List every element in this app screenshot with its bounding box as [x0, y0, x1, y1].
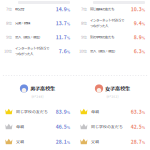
button[interactable]: 8位 — [75, 16, 150, 30]
button[interactable]: 父親 — [75, 134, 150, 149]
staticText: (n=252) — [106, 94, 118, 99]
staticText: 11.7 — [56, 33, 67, 41]
staticText: % — [67, 8, 70, 12]
staticText: % — [142, 50, 145, 54]
staticText: 13.7 — [56, 19, 67, 27]
staticText: 83.9 — [56, 108, 67, 115]
staticText: 8.9 — [134, 33, 142, 41]
staticText: 10.3 — [131, 5, 142, 13]
staticText: 8位 — [6, 20, 12, 26]
staticText: 父親 — [16, 139, 24, 144]
staticText: % — [67, 36, 70, 40]
staticText: つながった人 — [90, 23, 108, 28]
staticText: % — [67, 140, 70, 145]
button[interactable]: 8位 — [0, 16, 75, 30]
staticText: 10位 — [4, 48, 12, 54]
staticText: % — [142, 36, 145, 40]
staticText: 同じ学校の友だち — [16, 109, 48, 114]
staticText: % — [67, 50, 70, 54]
button[interactable]: 9位 — [0, 30, 75, 44]
staticText: インターネットやSNSで — [90, 18, 124, 23]
staticText: 母親 — [91, 109, 99, 114]
staticText: 7.6 — [59, 47, 67, 55]
staticText: 別の学校の友だち — [90, 34, 114, 39]
staticText: つながった人 — [15, 51, 33, 56]
staticText: 28.7 — [131, 138, 142, 145]
button[interactable]: 9位 — [75, 30, 150, 44]
staticText: 父親 — [91, 139, 99, 144]
staticText: 9位 — [81, 34, 87, 40]
staticText: 恋人（彼氏・彼女） — [15, 34, 42, 39]
staticText: % — [142, 110, 145, 115]
staticText: 恋人（彼氏・彼女） — [90, 48, 117, 53]
staticText: % — [67, 125, 70, 130]
staticText: 10位 — [79, 48, 87, 54]
staticText: 同じ学校の友だち — [91, 124, 123, 129]
staticText: 28.1 — [56, 138, 67, 145]
staticText: 8位 — [81, 20, 87, 26]
staticText: 6.3 — [134, 47, 142, 55]
staticText: 9位 — [6, 34, 12, 40]
button[interactable]: 同じ学校の友だち — [75, 119, 150, 134]
button[interactable]: 母親 — [75, 104, 150, 119]
button[interactable]: 10位 — [0, 44, 75, 58]
staticText: 9.4 — [134, 19, 142, 27]
staticText: % — [67, 22, 70, 26]
staticText: 7位 — [81, 6, 87, 12]
button[interactable]: 10位 — [75, 44, 150, 58]
staticText: 男子高校生 — [30, 85, 55, 92]
button[interactable]: 父親 — [0, 134, 75, 149]
staticText: % — [142, 140, 145, 145]
staticText: % — [142, 125, 145, 130]
staticText: 祖父母 — [15, 6, 24, 11]
staticText: (n=248) — [31, 94, 43, 99]
staticText: 14.9 — [56, 5, 67, 13]
staticText: 7位 — [6, 6, 12, 12]
staticText: % — [142, 22, 145, 26]
staticText: % — [67, 110, 70, 115]
staticText: 女子高校生 — [105, 85, 130, 92]
button[interactable]: 7位 — [0, 2, 75, 16]
staticText: 同じ趣味の友だち — [90, 6, 114, 11]
button[interactable]: 同じ学校の友だち — [0, 104, 75, 119]
staticText: 母親 — [16, 124, 24, 129]
button[interactable]: 母親 — [0, 119, 75, 134]
staticText: 兄弟・姉妹 — [15, 20, 30, 25]
staticText: 63.3 — [131, 108, 142, 115]
staticText: 46.5 — [56, 123, 67, 130]
staticText: 42.5 — [131, 123, 142, 130]
staticText: インターネットやSNSで — [15, 46, 49, 51]
staticText: % — [142, 8, 145, 12]
button[interactable]: 7位 — [75, 2, 150, 16]
